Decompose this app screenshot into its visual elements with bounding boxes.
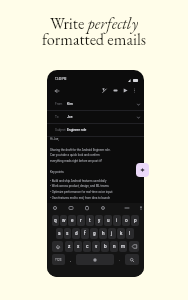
button[interactable]: Keyboard options	[50, 203, 59, 212]
button[interactable]: Send	[120, 85, 131, 96]
staticText: y	[98, 218, 101, 223]
button[interactable]: Space	[76, 254, 114, 265]
staticText: Key points:	[50, 170, 65, 173]
staticText: .	[119, 257, 121, 262]
button[interactable]: i	[113, 215, 121, 226]
staticText: • Own features end to end, from idea to …	[50, 196, 111, 199]
button[interactable]: v	[92, 241, 100, 252]
button[interactable]: GIF	[66, 203, 75, 212]
button[interactable]: l	[126, 228, 134, 239]
staticText: Engineer role	[67, 128, 87, 132]
button[interactable]: Backspace	[129, 241, 139, 252]
staticText: Kim	[67, 102, 73, 106]
staticText: Joe	[67, 115, 73, 119]
staticText: v	[95, 244, 98, 249]
button[interactable]: Voice input	[136, 203, 144, 212]
staticText: n	[113, 244, 116, 249]
button[interactable]: Back	[51, 85, 62, 96]
staticText: Can you take a quick look and confirm	[50, 153, 100, 156]
staticText: Write perfectly formatted emails	[0, 13, 188, 50]
staticText: d	[75, 231, 78, 236]
staticText: x	[77, 244, 80, 249]
button[interactable]: x	[74, 241, 82, 252]
button[interactable]: Format	[99, 85, 110, 96]
staticText: o	[125, 218, 128, 223]
button[interactable]: ?123	[52, 254, 65, 265]
button[interactable]: More options	[129, 85, 140, 96]
staticText: j	[111, 231, 113, 236]
staticText: b	[104, 244, 107, 249]
staticText: f	[84, 231, 86, 236]
button[interactable]: a	[56, 228, 63, 239]
staticText: ,	[70, 257, 71, 262]
button[interactable]: j	[108, 228, 116, 239]
button[interactable]: p	[131, 215, 139, 226]
button[interactable]: o	[122, 215, 130, 226]
button[interactable]: g	[90, 228, 98, 239]
staticText: everything reads right before we post it…	[50, 159, 103, 162]
button[interactable]: d	[72, 228, 80, 239]
button[interactable]: q	[52, 215, 59, 226]
staticText: m	[121, 244, 126, 249]
staticText: h	[102, 231, 105, 236]
staticText: t	[89, 218, 91, 223]
staticText: Sharing the draft for the Android Engine…	[50, 148, 111, 151]
button[interactable]: Comma	[66, 253, 75, 266]
staticText: p	[134, 218, 137, 223]
button[interactable]: y	[95, 215, 103, 226]
button[interactable]: Settings	[98, 203, 107, 212]
button[interactable]: c	[83, 241, 91, 252]
staticText: c	[86, 244, 89, 249]
button[interactable]: Attach	[110, 85, 121, 96]
staticText: e	[71, 218, 74, 223]
button[interactable]: w	[60, 215, 67, 226]
button[interactable]: z	[65, 241, 73, 252]
staticText: i	[116, 218, 118, 223]
staticText: Subject	[55, 128, 66, 132]
staticText: From	[55, 102, 63, 106]
staticText: q	[54, 218, 57, 223]
button[interactable]: From	[55, 98, 140, 110]
staticText: u	[107, 218, 110, 223]
staticText: a	[58, 231, 61, 236]
button[interactable]: t	[86, 215, 94, 226]
button[interactable]: e	[68, 215, 76, 226]
button[interactable]: Subject	[55, 124, 140, 136]
staticText: Hi Joe,	[50, 137, 59, 140]
staticText: l	[129, 231, 131, 236]
staticText: s	[66, 231, 69, 236]
staticText: k	[120, 231, 123, 236]
button[interactable]: f	[81, 228, 89, 239]
button[interactable]: Search	[125, 254, 139, 265]
button[interactable]: AI assist	[136, 163, 149, 177]
button[interactable]: More	[122, 203, 131, 212]
button[interactable]: s	[64, 228, 71, 239]
staticText: ?123	[55, 258, 62, 262]
staticText: • Work across product, design, and ML te…	[50, 184, 109, 187]
staticText: 12:30 PM	[55, 78, 67, 81]
staticText: w	[62, 218, 66, 223]
staticText: g	[93, 231, 96, 236]
button[interactable]: n	[110, 241, 118, 252]
button[interactable]: Shift	[52, 241, 63, 252]
staticText: To	[55, 115, 59, 119]
staticText: z	[68, 244, 71, 249]
button[interactable]: u	[104, 215, 112, 226]
staticText: r	[80, 218, 82, 223]
button[interactable]: Clipboard	[82, 203, 91, 212]
button[interactable]: To	[55, 111, 140, 123]
button[interactable]: r	[77, 215, 85, 226]
staticText: • Build and ship Android features used d…	[50, 179, 107, 182]
button[interactable]: m	[119, 241, 127, 252]
button[interactable]: h	[99, 228, 107, 239]
staticText: • Optimize performance for real-time voi…	[50, 190, 113, 193]
button[interactable]: Period	[115, 253, 124, 266]
button[interactable]: k	[117, 228, 125, 239]
button[interactable]: b	[101, 241, 109, 252]
